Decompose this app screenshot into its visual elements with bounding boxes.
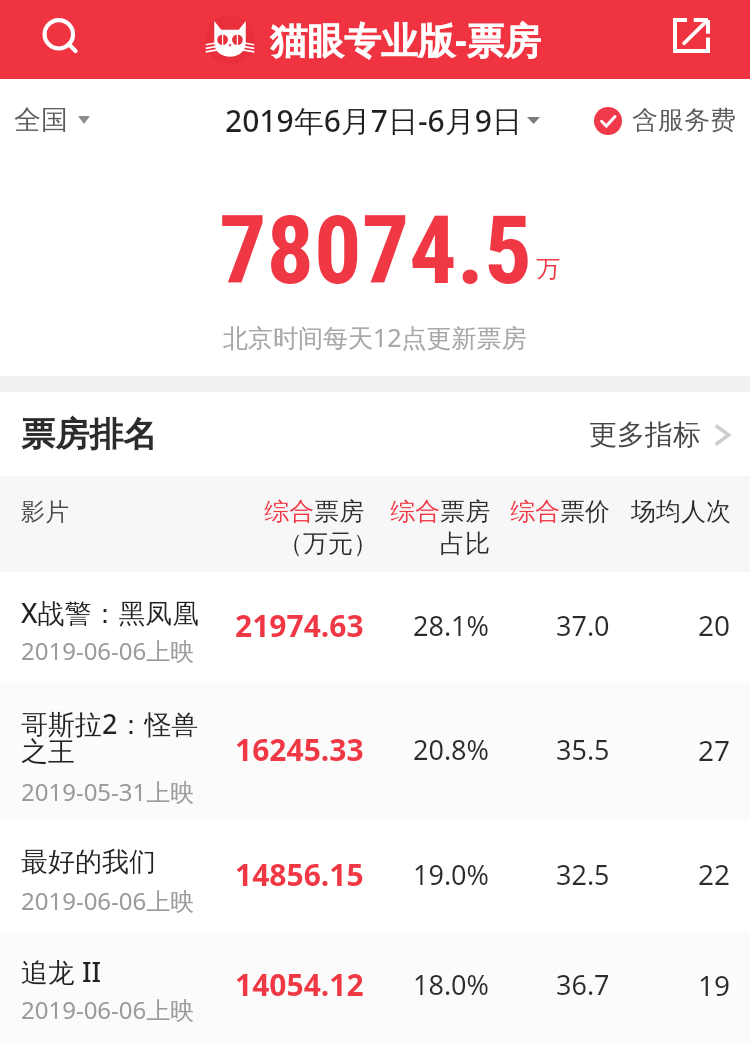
staticText: 哥斯拉2：怪兽 — [21, 705, 199, 742]
staticText: 19.0% — [413, 856, 490, 893]
staticText: 14856.15 — [235, 854, 364, 895]
staticText: X战警：黑凤凰 — [21, 594, 200, 631]
staticText: 20.8% — [413, 731, 490, 768]
button[interactable]: 追龙 II — [0, 931, 750, 1042]
staticText: 影片 — [21, 497, 69, 527]
staticText: 16245.33 — [235, 729, 364, 770]
button[interactable]: Search — [23, 0, 95, 79]
staticText: 19 — [698, 966, 731, 1004]
button[interactable]: X战警：黑凤凰 — [0, 572, 750, 682]
button[interactable]: 哥斯拉2：怪兽 — [0, 682, 750, 821]
staticText: 32.5 — [556, 856, 610, 893]
button[interactable]: 全国 — [14, 103, 90, 137]
staticText: 2019-06-06上映 — [21, 993, 195, 1026]
button[interactable]: 含服务费 — [594, 104, 736, 137]
staticText: 2019-06-06上映 — [21, 884, 195, 917]
staticText: 综合票房 — [390, 496, 490, 527]
staticText: 35.5 — [556, 731, 610, 768]
staticText: 36.7 — [556, 966, 610, 1003]
staticText: 21974.63 — [235, 605, 364, 646]
button[interactable]: Share — [659, 0, 723, 75]
staticText: 37.0 — [556, 607, 610, 644]
staticText: 78074.5 — [219, 196, 532, 306]
staticText: 猫眼专业版-票房 — [270, 14, 541, 65]
button[interactable]: 更多指标 — [589, 417, 730, 452]
staticText: 追龙 II — [21, 953, 102, 990]
staticText: 全国 — [14, 103, 68, 137]
staticText: 2019-06-06上映 — [21, 634, 195, 667]
staticText: 2019年6月7日-6月9日 — [225, 100, 522, 141]
staticText: 14054.12 — [235, 964, 364, 1005]
staticText: 含服务费 — [632, 104, 736, 137]
staticText: 20 — [698, 606, 731, 644]
staticText: （万元） — [278, 528, 378, 559]
button[interactable]: 2019年6月7日-6月9日 — [225, 100, 540, 141]
staticText: 最好的我们 — [21, 845, 156, 879]
staticText: 北京时间每天12点更新票房 — [223, 320, 527, 354]
staticText: 占比 — [440, 528, 490, 559]
staticText: 之王 — [21, 735, 75, 769]
staticText: 综合票房 — [264, 496, 364, 527]
staticText: 场均人次 — [631, 496, 731, 527]
staticText: 18.0% — [413, 966, 490, 1003]
staticText: 万 — [536, 254, 560, 284]
staticText: 22 — [698, 855, 731, 893]
staticText: 更多指标 — [589, 417, 701, 452]
staticText: 27 — [698, 731, 731, 769]
button[interactable]: 最好的我们 — [0, 821, 750, 931]
staticText: 28.1% — [413, 607, 490, 644]
staticText: 综合票价 — [510, 496, 610, 527]
staticText: 2019-05-31上映 — [21, 775, 195, 808]
staticText: 票房排名 — [21, 413, 157, 456]
